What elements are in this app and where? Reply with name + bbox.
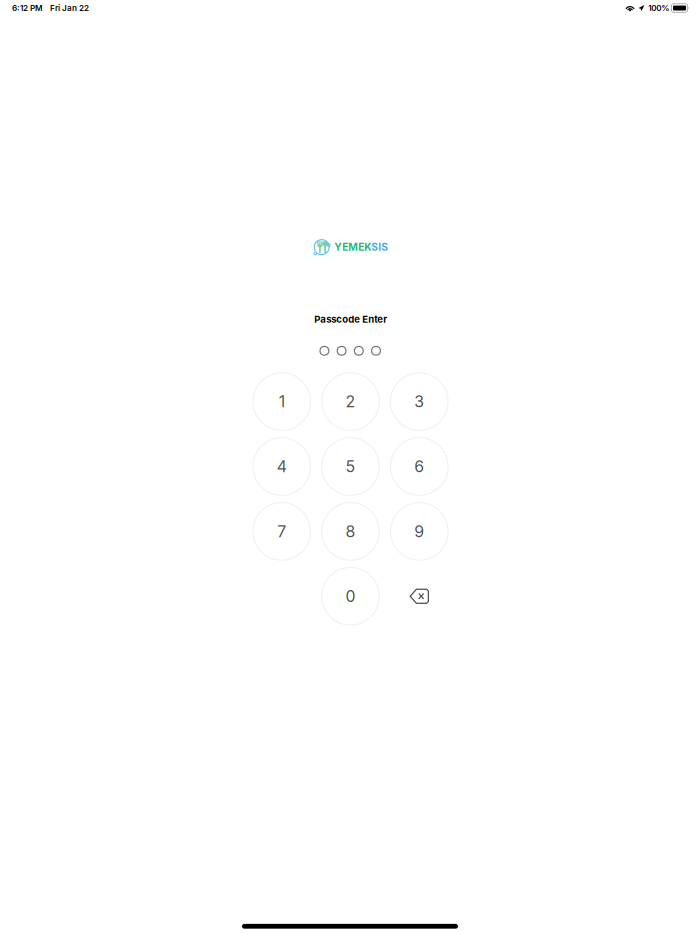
staticText: 6:12 PM (12, 3, 43, 13)
staticText: 100% (648, 3, 669, 13)
staticText: 1 (279, 392, 285, 411)
staticText: 7 (277, 522, 286, 541)
staticText: Fri Jan 22 (50, 3, 89, 13)
button[interactable]: 8 (322, 503, 379, 560)
staticText: YEMEK (334, 241, 371, 253)
button[interactable]: 0 (322, 567, 379, 625)
button[interactable]: Delete (390, 567, 448, 625)
staticText: 4 (277, 457, 287, 476)
staticText: 3 (414, 392, 424, 411)
staticText: 9 (414, 522, 424, 541)
staticText: 5 (345, 457, 355, 476)
staticText: 0 (345, 587, 355, 606)
button[interactable]: 1 (253, 373, 310, 430)
button[interactable]: 9 (390, 503, 448, 560)
staticText: SIS (371, 241, 388, 253)
button[interactable]: 4 (253, 438, 310, 495)
button[interactable]: 3 (390, 373, 448, 430)
staticText: 6 (414, 457, 424, 476)
staticText: 8 (345, 522, 355, 541)
staticText: Passcode Enter (314, 313, 387, 325)
button[interactable]: 6 (390, 438, 448, 495)
staticText: 2 (345, 392, 355, 411)
button[interactable]: 2 (322, 373, 379, 430)
button[interactable]: 7 (253, 503, 310, 560)
button[interactable]: 5 (322, 438, 379, 495)
